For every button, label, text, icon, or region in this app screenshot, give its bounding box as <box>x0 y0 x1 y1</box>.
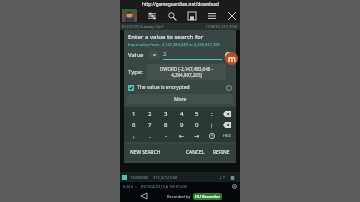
staticText: 5 <box>195 110 199 118</box>
staticText: DU Recorder <box>195 194 220 199</box>
button[interactable]: Sliders <box>146 10 157 21</box>
button[interactable]: Clear <box>219 119 234 130</box>
button[interactable]: 7 <box>142 119 158 130</box>
staticText: + <box>135 184 138 189</box>
button[interactable]: History <box>204 130 219 141</box>
staticText: Input value from -2,147,483,648 to 4,294… <box>128 42 220 47</box>
button[interactable]: The value is encrypted <box>128 84 232 91</box>
button[interactable]: Search <box>166 10 177 21</box>
staticText: Enter a value to search for <box>128 33 204 41</box>
button[interactable]: Backspace <box>219 108 234 119</box>
button[interactable]: Save <box>186 10 197 21</box>
button[interactable]: Close <box>226 10 237 21</box>
button[interactable]: = <box>149 51 159 59</box>
button[interactable]: - <box>158 130 174 141</box>
button[interactable]: . <box>142 130 158 141</box>
staticText: JIVCHCA;D3,C3;A 100 81:430 <box>141 184 187 189</box>
button[interactable]: REFINE <box>211 147 232 158</box>
button[interactable]: 1 <box>126 108 142 119</box>
staticText: REFINE <box>213 149 230 156</box>
staticText: 9 <box>180 121 184 129</box>
button[interactable]: 4 <box>174 108 189 119</box>
staticText: 0 <box>195 121 199 129</box>
staticText: NEW SEARCH <box>130 149 161 156</box>
staticText: http://gameguardian.net/download <box>142 1 219 7</box>
staticText: 3 <box>164 110 168 118</box>
staticText: → <box>194 132 200 139</box>
staticText: Type: <box>128 68 143 76</box>
staticText: 7 <box>148 121 152 129</box>
staticText: 6 <box>132 121 136 129</box>
button[interactable]: → <box>189 130 204 141</box>
button[interactable]: 5 <box>189 108 204 119</box>
button[interactable]: 3 <box>158 108 174 119</box>
button[interactable]: DWORD (-2,147,483,648 - 4,294,967,295) <box>147 64 226 80</box>
staticText: 8.24.0 <box>123 184 133 189</box>
staticText: 8 <box>164 121 168 129</box>
button[interactable]: Settings <box>231 183 237 189</box>
button[interactable]: 8 <box>158 119 174 130</box>
button[interactable]: Sort <box>219 174 226 181</box>
staticText: 13008080 <box>130 175 149 180</box>
button[interactable]: 9 <box>174 119 189 130</box>
staticText: 1 <box>132 110 136 118</box>
staticText: III [0318] Subway Surf <box>122 24 164 29</box>
button[interactable]: 6 <box>126 119 142 130</box>
button[interactable]: Dropdown <box>225 52 232 59</box>
button[interactable]: Help <box>225 84 232 91</box>
button[interactable]: Back <box>139 191 149 201</box>
button[interactable]: NEW SEARCH <box>128 147 163 158</box>
button[interactable]: GameGuardian <box>225 52 238 65</box>
staticText: (108/52,319,904) <box>206 24 238 29</box>
staticText: More <box>174 96 187 103</box>
button[interactable]: CANCEL <box>184 147 207 158</box>
staticText: 2 <box>163 50 167 58</box>
button[interactable]: 2 <box>142 108 158 119</box>
button[interactable]: 0 <box>189 119 204 130</box>
staticText: 2 <box>148 110 152 118</box>
button[interactable]: Menu <box>206 10 217 21</box>
staticText: 4 <box>180 110 184 118</box>
staticText: 315,6/12,568 <box>153 175 178 180</box>
button[interactable]: , <box>126 130 142 141</box>
staticText: HEX <box>223 133 231 138</box>
staticText: ; <box>211 121 213 129</box>
button[interactable]: HEX <box>219 130 234 141</box>
staticText: The value is encrypted <box>137 84 190 91</box>
staticText: Recorded by <box>167 194 191 199</box>
button[interactable]: : <box>204 108 219 119</box>
button[interactable]: Delete <box>229 174 236 181</box>
staticText: . <box>149 132 151 140</box>
staticText: = <box>153 52 156 59</box>
staticText: DWORD (-2,147,483,648 - 4,294,967,295) <box>147 66 226 78</box>
button[interactable]: More <box>127 94 233 104</box>
staticText: - <box>165 132 167 140</box>
staticText: , <box>133 132 135 140</box>
staticText: Value <box>128 51 144 59</box>
staticText: m <box>228 53 236 64</box>
staticText: CANCEL <box>186 149 205 156</box>
staticText: ↓↑ <box>219 175 226 180</box>
staticText: : <box>211 110 213 118</box>
button[interactable]: ← <box>174 130 189 141</box>
button[interactable]: ; <box>204 119 219 130</box>
staticText: ← <box>179 132 185 139</box>
